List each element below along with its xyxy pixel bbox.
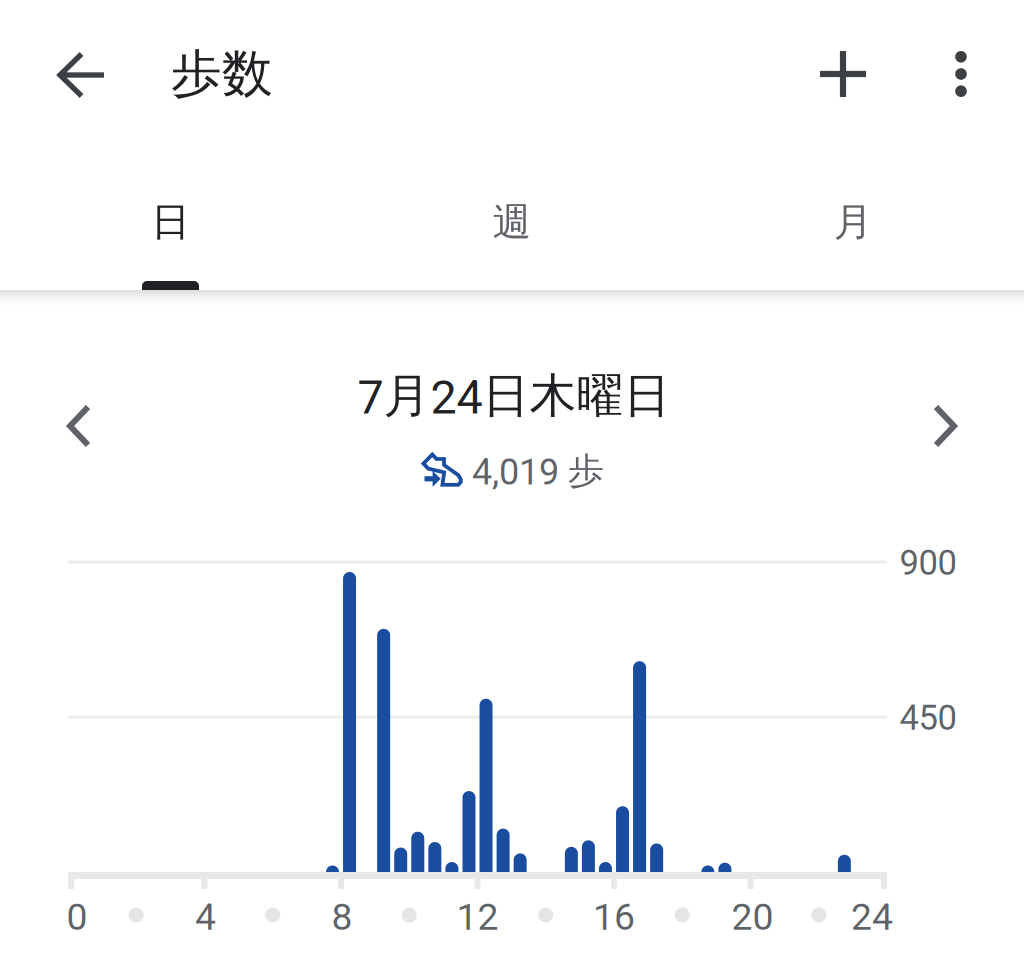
button[interactable]: 日 <box>0 150 341 290</box>
staticText: 7月24日木曜日 <box>357 367 670 425</box>
staticText: 16 <box>593 895 635 939</box>
staticText: 4 <box>195 895 216 939</box>
staticText: 20 <box>731 895 773 939</box>
staticText: 日 <box>151 198 190 246</box>
staticText: 月 <box>834 198 873 246</box>
staticText: 歩数 <box>171 42 273 106</box>
button[interactable]: 週 <box>341 150 683 290</box>
staticText: 450 <box>899 698 956 738</box>
staticText: 0 <box>66 895 87 939</box>
button[interactable]: 歩数 <box>152 26 292 122</box>
button[interactable]: Back <box>34 27 130 123</box>
button[interactable]: Add <box>795 26 891 122</box>
button[interactable]: Next day <box>900 381 990 471</box>
staticText: 12 <box>456 895 498 939</box>
staticText: 900 <box>899 543 956 583</box>
button[interactable]: 月 <box>683 150 1024 290</box>
button[interactable]: More options <box>919 26 1003 122</box>
staticText: 24 <box>851 895 893 939</box>
staticText: 週 <box>492 198 531 246</box>
staticText: 4,019 歩 <box>472 448 604 494</box>
button[interactable]: Previous day <box>34 381 124 471</box>
staticText: 8 <box>331 895 352 939</box>
